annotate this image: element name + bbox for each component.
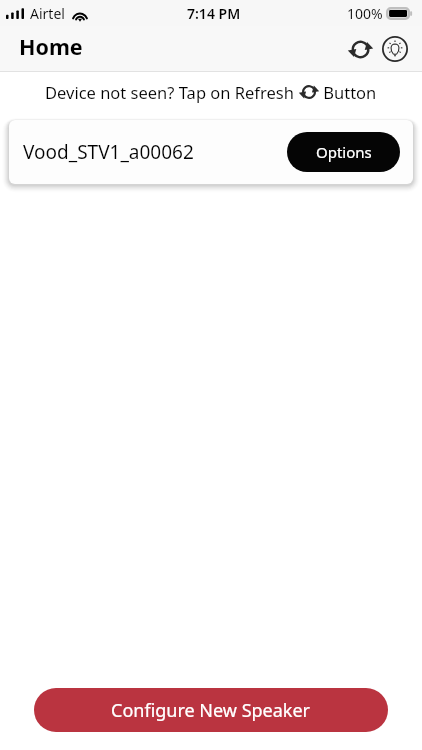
button[interactable]: Options [287, 132, 400, 172]
staticText: Vood_STV1_a00062 [23, 139, 194, 165]
staticText: Options [316, 142, 372, 162]
button[interactable]: Configure New Speaker [34, 688, 388, 732]
button[interactable]: Vood_STV1_a00062 [9, 120, 413, 184]
staticText: Home [19, 32, 83, 61]
staticText: Device not seen? Tap on Refresh [45, 81, 299, 103]
button[interactable]: Tips [379, 33, 411, 65]
button[interactable]: Refresh [344, 33, 376, 65]
staticText: Configure New Speaker [111, 698, 311, 723]
staticText: Airtel [30, 4, 65, 23]
staticText: 100% [347, 4, 383, 23]
staticText: 7:14 PM [187, 4, 241, 23]
staticText: Button [319, 81, 377, 103]
